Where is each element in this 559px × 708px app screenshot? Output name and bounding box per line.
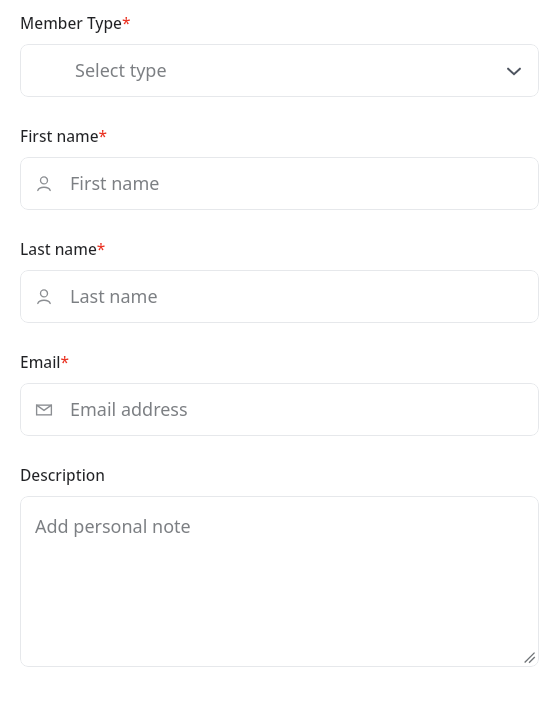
- staticText: Last name: [70, 284, 539, 309]
- staticText: Last name*: [20, 238, 106, 259]
- staticText: Description: [20, 464, 106, 485]
- staticText: First name: [70, 171, 539, 196]
- staticText: Email address: [70, 397, 539, 422]
- staticText: Add personal note: [35, 514, 191, 539]
- button[interactable]: Email address: [20, 383, 539, 436]
- staticText: Select type: [75, 58, 505, 83]
- button[interactable]: Select member type: [20, 44, 539, 97]
- button[interactable]: Description note: [20, 496, 539, 667]
- staticText: First name*: [20, 125, 108, 146]
- button[interactable]: Last name: [20, 270, 539, 323]
- button[interactable]: First name: [20, 157, 539, 210]
- staticText: Member Type*: [20, 12, 131, 33]
- staticText: Email*: [20, 351, 70, 372]
